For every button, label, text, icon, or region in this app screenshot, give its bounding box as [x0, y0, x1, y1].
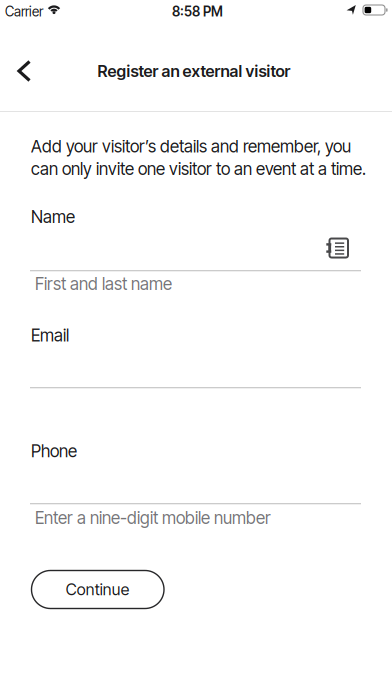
staticText: Phone	[31, 441, 77, 461]
staticText: Carrier	[5, 3, 43, 20]
staticText: First and last name	[35, 273, 172, 294]
staticText: Add your visitor’s details and remember,…	[31, 136, 366, 179]
button[interactable]: Choose from contacts	[0, 0, 30, 30]
staticText: Continue	[66, 580, 130, 599]
staticText: Email	[31, 325, 69, 346]
button[interactable]: Back	[0, 0, 44, 44]
staticText: 8:58 PM	[172, 3, 223, 20]
button[interactable]: Continue	[31, 570, 164, 608]
staticText: Register an external visitor	[97, 61, 290, 81]
staticText: Name	[31, 206, 75, 227]
staticText: Enter a nine-digit mobile number	[35, 507, 271, 528]
